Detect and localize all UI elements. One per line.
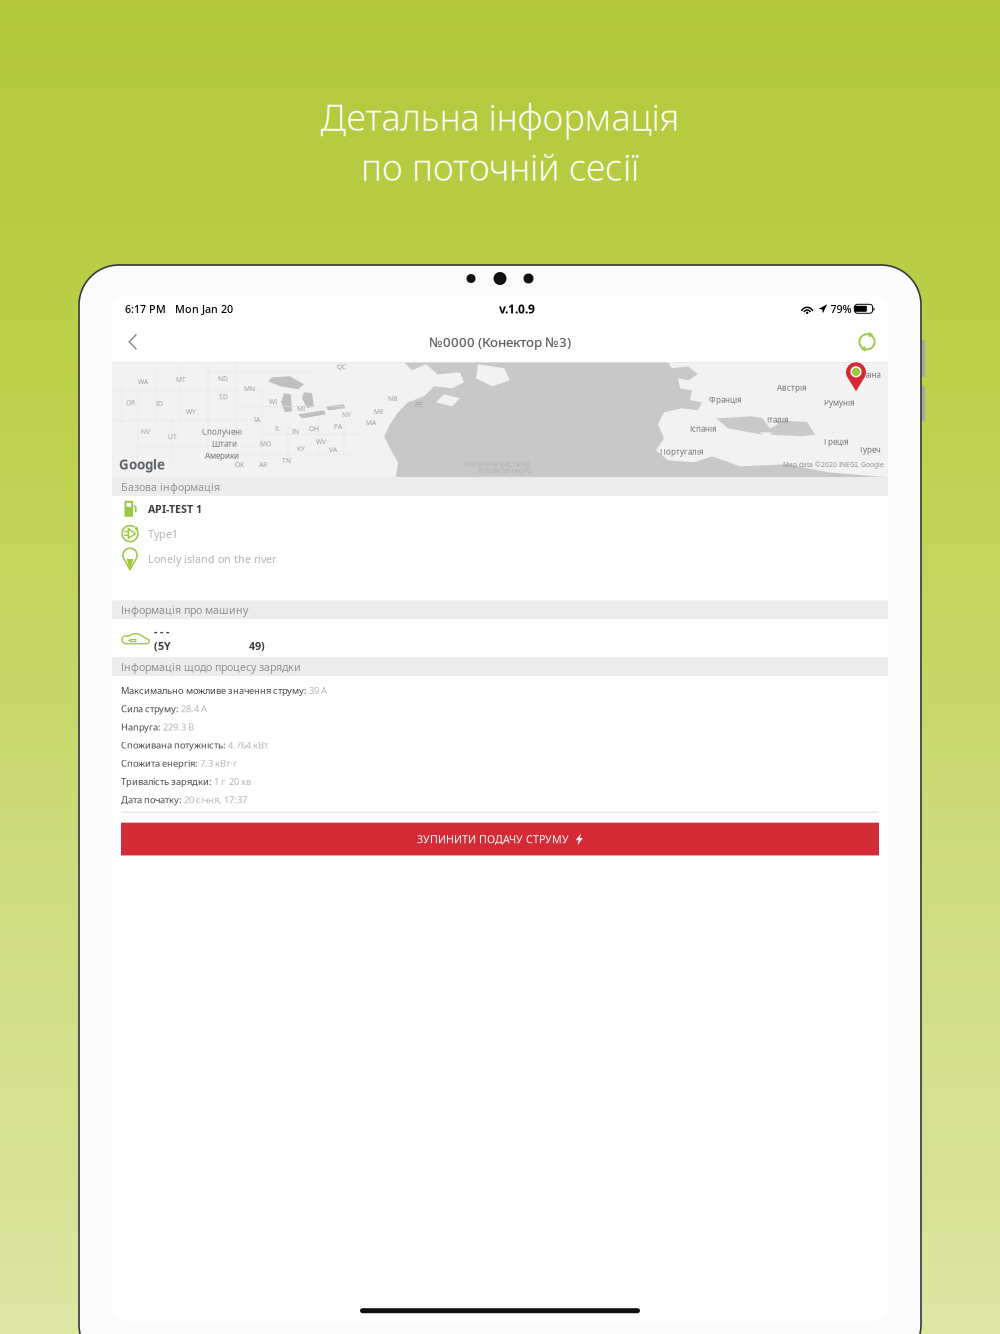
staticText: NV bbox=[141, 427, 150, 436]
staticText: 229.3 В bbox=[163, 721, 194, 733]
staticText: Атлантичного bbox=[478, 465, 532, 476]
staticText: Туреч bbox=[859, 444, 881, 455]
staticText: №0000 (Конектор №3) bbox=[429, 333, 571, 351]
staticText: - - - bbox=[154, 624, 169, 638]
staticText: IA bbox=[254, 415, 260, 424]
staticText: північна частина bbox=[464, 458, 530, 469]
staticText: по поточній сесії bbox=[361, 143, 639, 191]
staticText: Lonely island on the river bbox=[148, 552, 276, 566]
staticText: Mon Jan 20 bbox=[175, 302, 233, 316]
staticText: Америки bbox=[205, 450, 239, 461]
staticText: IL bbox=[275, 424, 280, 433]
button[interactable]: Refresh bbox=[849, 323, 885, 361]
staticText: PA bbox=[334, 422, 342, 431]
staticText: IN bbox=[292, 427, 299, 436]
staticText: MO bbox=[260, 439, 271, 448]
staticText: Базова інформація bbox=[121, 480, 220, 494]
staticText: NY bbox=[342, 410, 351, 419]
staticText: ЗУПИНИТИ ПОДАЧУ СТРУМУ bbox=[417, 832, 569, 846]
staticText: Map data ©2020 INEGI, Google bbox=[783, 460, 884, 469]
staticText: 28.4 А bbox=[181, 702, 207, 715]
staticText: Максимально можливе значення струму: bbox=[121, 684, 309, 697]
staticText: Тривалість зарядки: bbox=[121, 775, 214, 788]
staticText: ID bbox=[156, 399, 163, 408]
staticText: AR bbox=[259, 460, 267, 469]
staticText: PE bbox=[415, 400, 423, 409]
staticText: MT bbox=[176, 375, 186, 384]
staticText: Італія bbox=[767, 414, 789, 425]
staticText: 79% bbox=[831, 302, 852, 316]
staticText: 6:17 PM bbox=[125, 302, 166, 316]
staticText: Дата початку: bbox=[121, 793, 184, 806]
staticText: WY bbox=[186, 407, 196, 416]
staticText: VA bbox=[329, 445, 337, 454]
staticText: v.1.0.9 bbox=[499, 301, 535, 317]
staticText: Споживана потужність: bbox=[121, 739, 228, 751]
staticText: Сила струму: bbox=[121, 702, 181, 715]
staticText: WV bbox=[316, 437, 326, 446]
staticText: OH bbox=[309, 424, 319, 433]
staticText: MA bbox=[366, 418, 376, 427]
staticText: Австрія bbox=[777, 382, 807, 393]
staticText: 39 А bbox=[309, 684, 327, 697]
staticText: Інформація щодо процесу зарядки bbox=[121, 660, 301, 674]
staticText: Детальна інформація bbox=[320, 93, 679, 141]
button[interactable]: ЗУПИНИТИ ПОДАЧУ СТРУМУ bbox=[121, 823, 879, 856]
staticText: WI bbox=[269, 397, 277, 406]
staticText: Google bbox=[119, 456, 165, 473]
staticText: Сполучені bbox=[202, 426, 242, 437]
staticText: SD bbox=[219, 392, 228, 401]
staticText: Штати bbox=[212, 438, 237, 449]
staticText: ME bbox=[374, 407, 384, 416]
staticText: Греція bbox=[824, 436, 849, 447]
staticText: MN bbox=[244, 384, 255, 393]
staticText: 20 січня, 17:37 bbox=[184, 793, 247, 806]
staticText: WA bbox=[138, 377, 148, 386]
staticText: 4.764 кВт bbox=[228, 739, 268, 751]
staticText: Іспанія bbox=[690, 423, 717, 434]
staticText: UT bbox=[168, 432, 177, 441]
staticText: OK bbox=[235, 460, 244, 469]
staticText: MI bbox=[297, 404, 305, 413]
staticText: 1 г 20 хв bbox=[214, 775, 251, 788]
staticText: 7.3 кВт·г bbox=[200, 757, 237, 769]
staticText: Румунія bbox=[824, 397, 855, 408]
button[interactable]: Back bbox=[115, 323, 151, 361]
staticText: Напруга: bbox=[121, 721, 163, 733]
staticText: Франція bbox=[709, 394, 742, 405]
staticText: Type1 bbox=[148, 527, 178, 541]
staticText: KY bbox=[297, 444, 305, 453]
staticText: 49) bbox=[249, 639, 265, 653]
staticText: OR bbox=[126, 398, 135, 407]
staticText: Спожита енергія: bbox=[121, 757, 200, 769]
staticText: TN bbox=[282, 456, 291, 465]
staticText: Україна bbox=[851, 369, 880, 380]
staticText: Інформація про машину bbox=[121, 603, 248, 617]
staticText: Португалія bbox=[660, 446, 704, 457]
staticText: QC bbox=[337, 362, 346, 371]
staticText: API-TEST 1 bbox=[148, 502, 202, 516]
staticText: (5Y bbox=[154, 639, 171, 653]
staticText: NB bbox=[388, 394, 397, 403]
staticText: ND bbox=[218, 374, 228, 383]
